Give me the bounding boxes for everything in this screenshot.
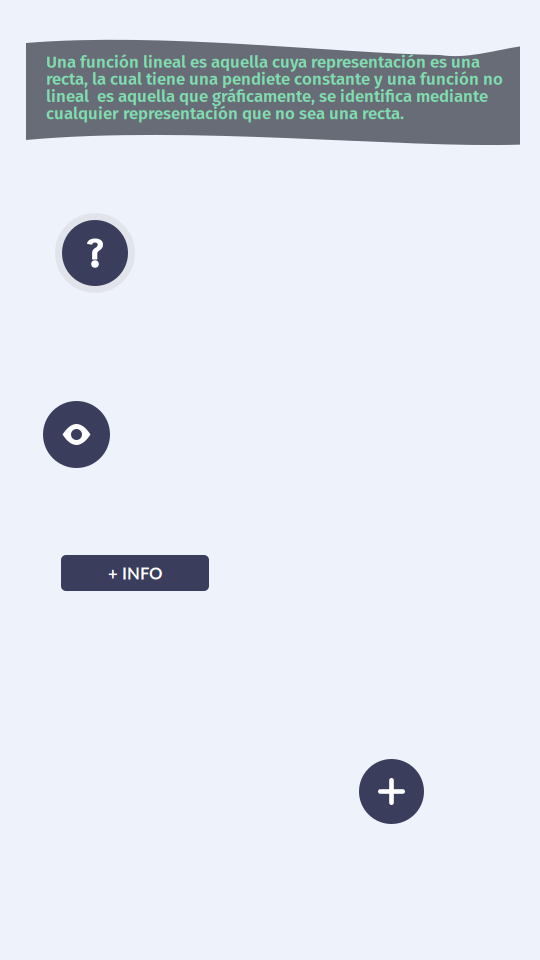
staticText: Una función lineal es aquella cuya repre… bbox=[46, 52, 503, 124]
button[interactable]: Add bbox=[359, 759, 424, 824]
button[interactable]: Help bbox=[55, 213, 135, 293]
button[interactable]: Show bbox=[43, 401, 110, 468]
button[interactable]: + INFO bbox=[61, 555, 209, 591]
staticText: + INFO bbox=[108, 563, 162, 583]
